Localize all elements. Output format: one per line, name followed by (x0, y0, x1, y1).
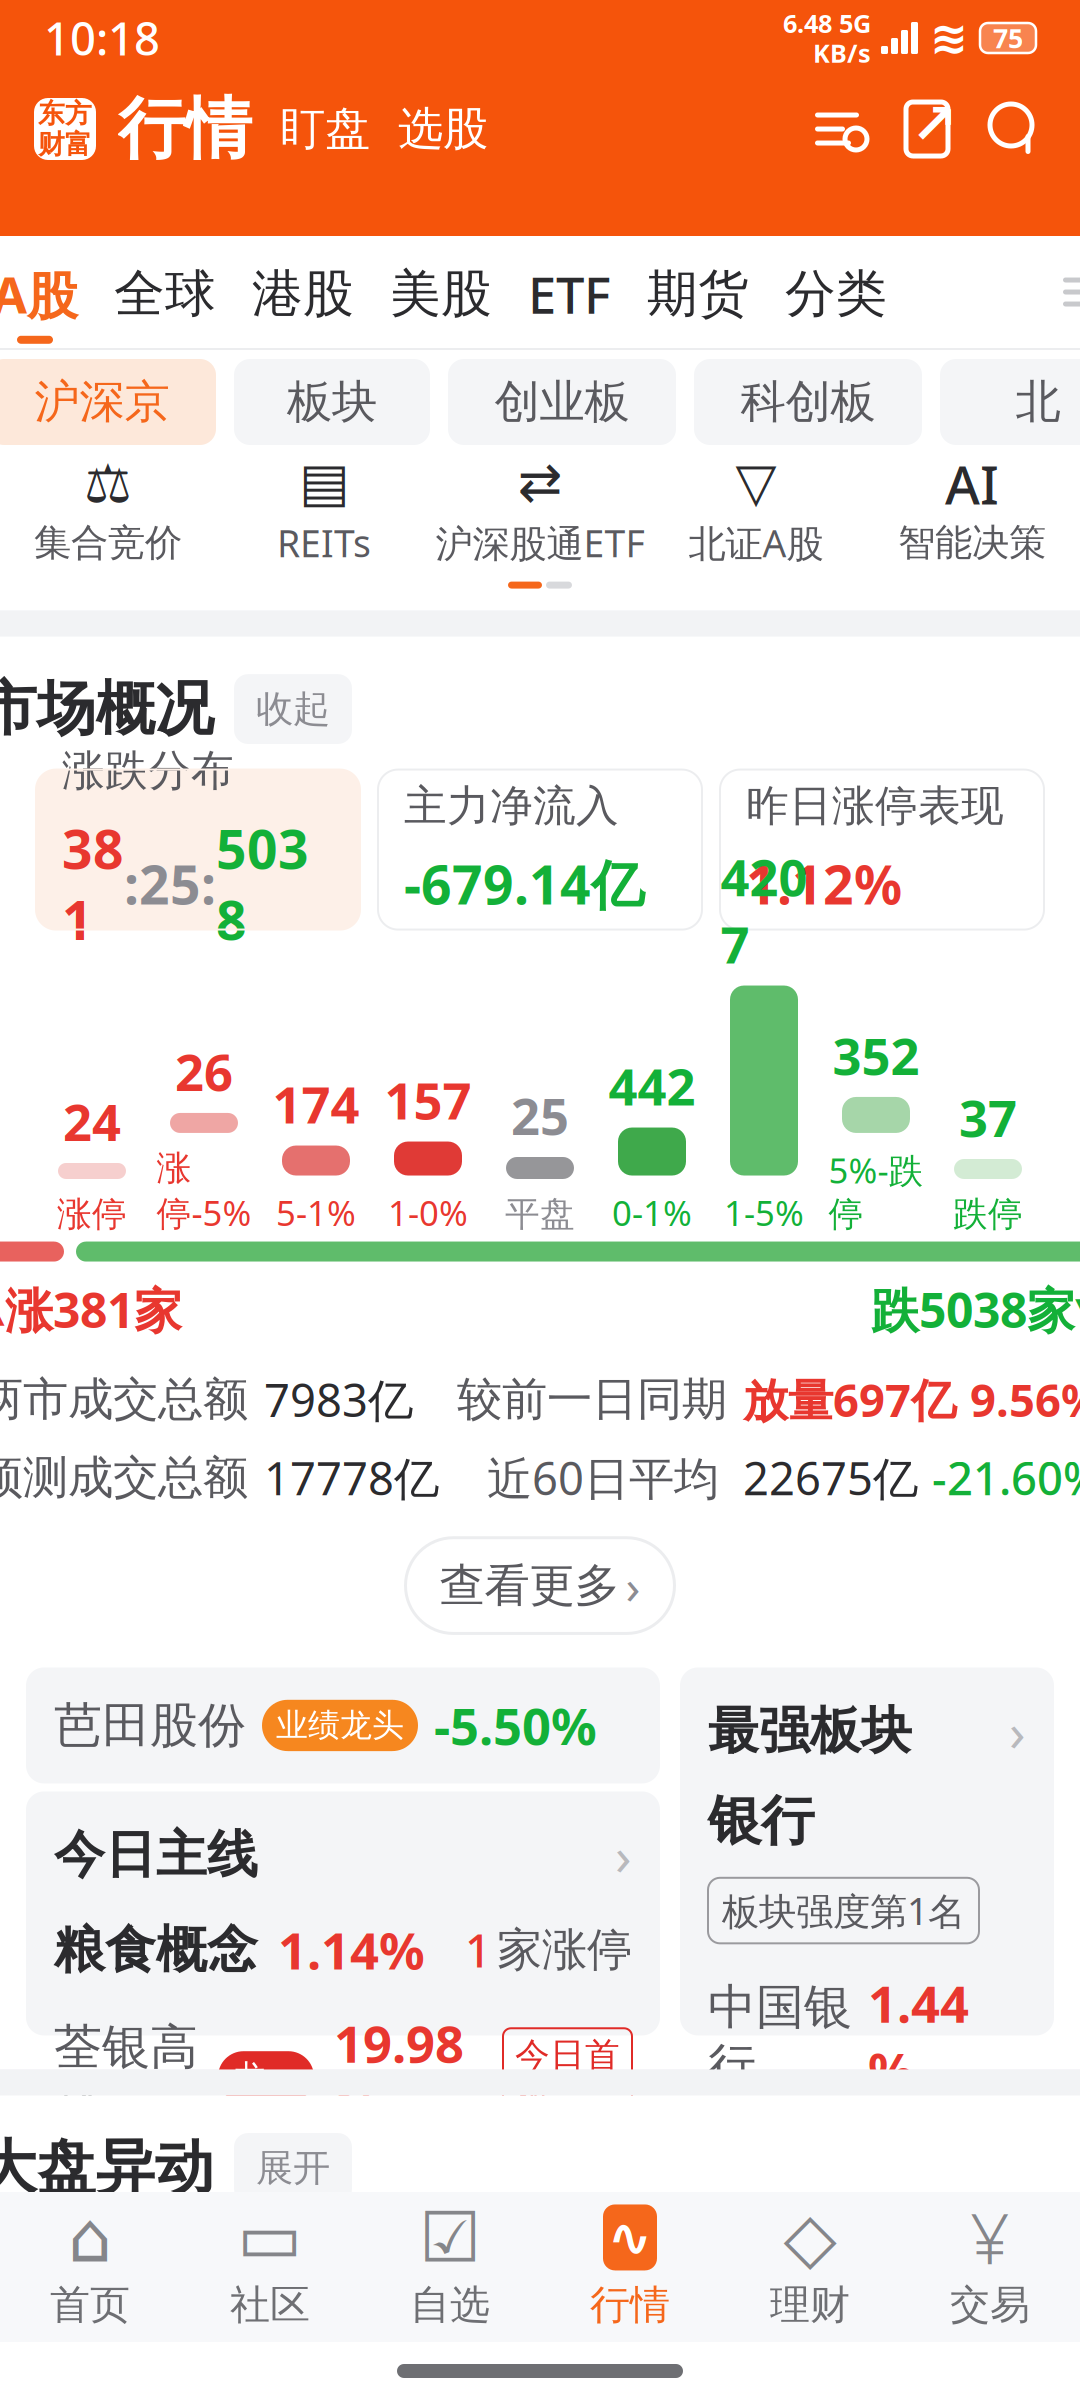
button[interactable]: ⌂ (0, 2192, 180, 2342)
staticText: 理财 (770, 2280, 850, 2329)
staticText: 22675亿 (743, 1447, 918, 1508)
staticText: 科创板 (740, 374, 875, 430)
button[interactable]: ETF (510, 240, 629, 344)
button[interactable]: 沪深京 (0, 359, 216, 445)
button[interactable]: 今日主线 (26, 1791, 660, 2035)
staticText: ⌂ (68, 2198, 112, 2277)
staticText: 涨停-5% (156, 1147, 251, 1235)
staticText: › (615, 1819, 632, 1890)
staticText: 沪深股通ETF (435, 518, 644, 568)
button[interactable]: 更多分类 (1050, 262, 1080, 322)
button[interactable]: ⇄ (432, 458, 648, 568)
staticText: 25 (511, 1082, 569, 1149)
staticText: 352 (832, 1022, 919, 1089)
button[interactable]: 10:00 (0, 2228, 1080, 2332)
staticText: 智能决策 (898, 520, 1046, 566)
staticText: 25 (139, 848, 201, 919)
button[interactable]: AI (864, 460, 1080, 566)
button[interactable]: ☑ (360, 2192, 540, 2342)
button[interactable]: 北 (940, 359, 1080, 445)
staticText: 展开 (256, 2145, 330, 2191)
button[interactable]: ▭ (180, 2192, 360, 2342)
staticText: 家涨停 (497, 1922, 632, 1978)
staticText: 东方 (38, 97, 92, 130)
staticText: 今日首板 (515, 2034, 620, 2119)
button[interactable]: ⚖︎ (0, 460, 216, 566)
button[interactable]: 涨跌分布 (36, 770, 360, 930)
staticText: 昨日涨停表现 (746, 780, 1004, 832)
button[interactable]: 查看更多 (405, 1538, 674, 1633)
button[interactable]: 美股 (372, 243, 510, 341)
staticText: 中国银行 (708, 1978, 852, 2096)
staticText: 1 (465, 1920, 491, 1980)
staticText: : (201, 848, 216, 919)
button[interactable]: ▤ (216, 458, 432, 568)
staticText: 盯盘 (280, 101, 370, 157)
staticText: 1.14% (278, 1916, 425, 1984)
staticText: 5038 (216, 813, 309, 954)
staticText: : (124, 848, 139, 919)
staticText: 75 (993, 20, 1023, 56)
staticText: -679.14亿 (404, 848, 644, 919)
staticText: ☑ (419, 2198, 481, 2277)
button[interactable]: 盯盘 (266, 93, 384, 165)
button[interactable]: ▽ (648, 458, 864, 568)
button[interactable]: 搜索 (984, 98, 1046, 160)
staticText: 业绩龙头 (276, 1706, 404, 1745)
button[interactable]: 昨日涨停表现 (720, 770, 1044, 930)
staticText: 沪深京 (34, 374, 169, 430)
button[interactable]: 港股 (234, 243, 372, 341)
button[interactable]: 科创板 (694, 359, 922, 445)
button[interactable]: 分享 (896, 98, 958, 160)
button[interactable]: 最强板块 (680, 1667, 1054, 2035)
staticText: 1.44% (868, 1969, 969, 2104)
staticText: 381 (62, 813, 124, 954)
button[interactable]: 期货 (629, 243, 767, 341)
staticText: 分类 (785, 263, 887, 325)
button[interactable]: ∿ (540, 2192, 720, 2342)
button[interactable]: ◇ (720, 2192, 900, 2342)
staticText: 主力净流入 (404, 780, 619, 832)
staticText: 近60日平均 (487, 1447, 719, 1508)
staticText: KB/s (813, 36, 871, 70)
button[interactable]: 主力净流入 (378, 770, 702, 930)
button[interactable]: 排序设置 (808, 98, 870, 160)
staticText: 1-0% (388, 1189, 468, 1235)
staticText: 1.12% (746, 848, 902, 919)
button[interactable]: 分类 (767, 243, 905, 341)
staticText: 首页 (50, 2280, 130, 2329)
button[interactable]: ¥ (900, 2192, 1080, 2342)
staticText: 行情 (590, 2280, 670, 2329)
staticText: 交易 (950, 2280, 1030, 2329)
staticText: ▤ (299, 452, 349, 512)
button[interactable]: 市场概况 (0, 637, 1080, 770)
staticText: 涨停 (57, 1193, 127, 1236)
staticText: ↗ (910, 92, 957, 156)
staticText: 平盘 (505, 1193, 575, 1236)
staticText: 转基因大幅走强 (170, 2249, 527, 2311)
staticText: ≋ (930, 12, 968, 64)
button[interactable]: 选股 (384, 93, 502, 165)
button[interactable]: 板块 (234, 359, 430, 445)
staticText: ▼ (1075, 1290, 1080, 1329)
button[interactable]: 芭田股份 (26, 1667, 660, 1783)
button[interactable]: A股 (0, 240, 96, 344)
staticText: 最强板块 (708, 1700, 912, 1762)
staticText: 较前一日同期 (457, 1372, 727, 1427)
staticText: 预测成交总额 (0, 1450, 248, 1505)
staticText: 放量697亿 (743, 1369, 956, 1429)
staticText: 创业板 (494, 374, 629, 430)
staticText: AI (945, 448, 999, 519)
button[interactable]: 全球 (96, 243, 234, 341)
button[interactable]: 大盘异动 (0, 2095, 1080, 2228)
staticText: -21.60% (932, 1447, 1080, 1508)
staticText: 6.48 5G (783, 6, 871, 40)
staticText: 跌5038家 (871, 1278, 1075, 1341)
staticText: 大盘异动 (0, 2132, 214, 2204)
staticText: ▲ (0, 1290, 5, 1329)
staticText: 龙一 (234, 2057, 298, 2096)
staticText: 板块强度第1名 (722, 1886, 965, 1935)
staticText: 4207 (720, 843, 807, 978)
staticText: 9.56% (970, 1369, 1080, 1429)
button[interactable]: 创业板 (448, 359, 676, 445)
